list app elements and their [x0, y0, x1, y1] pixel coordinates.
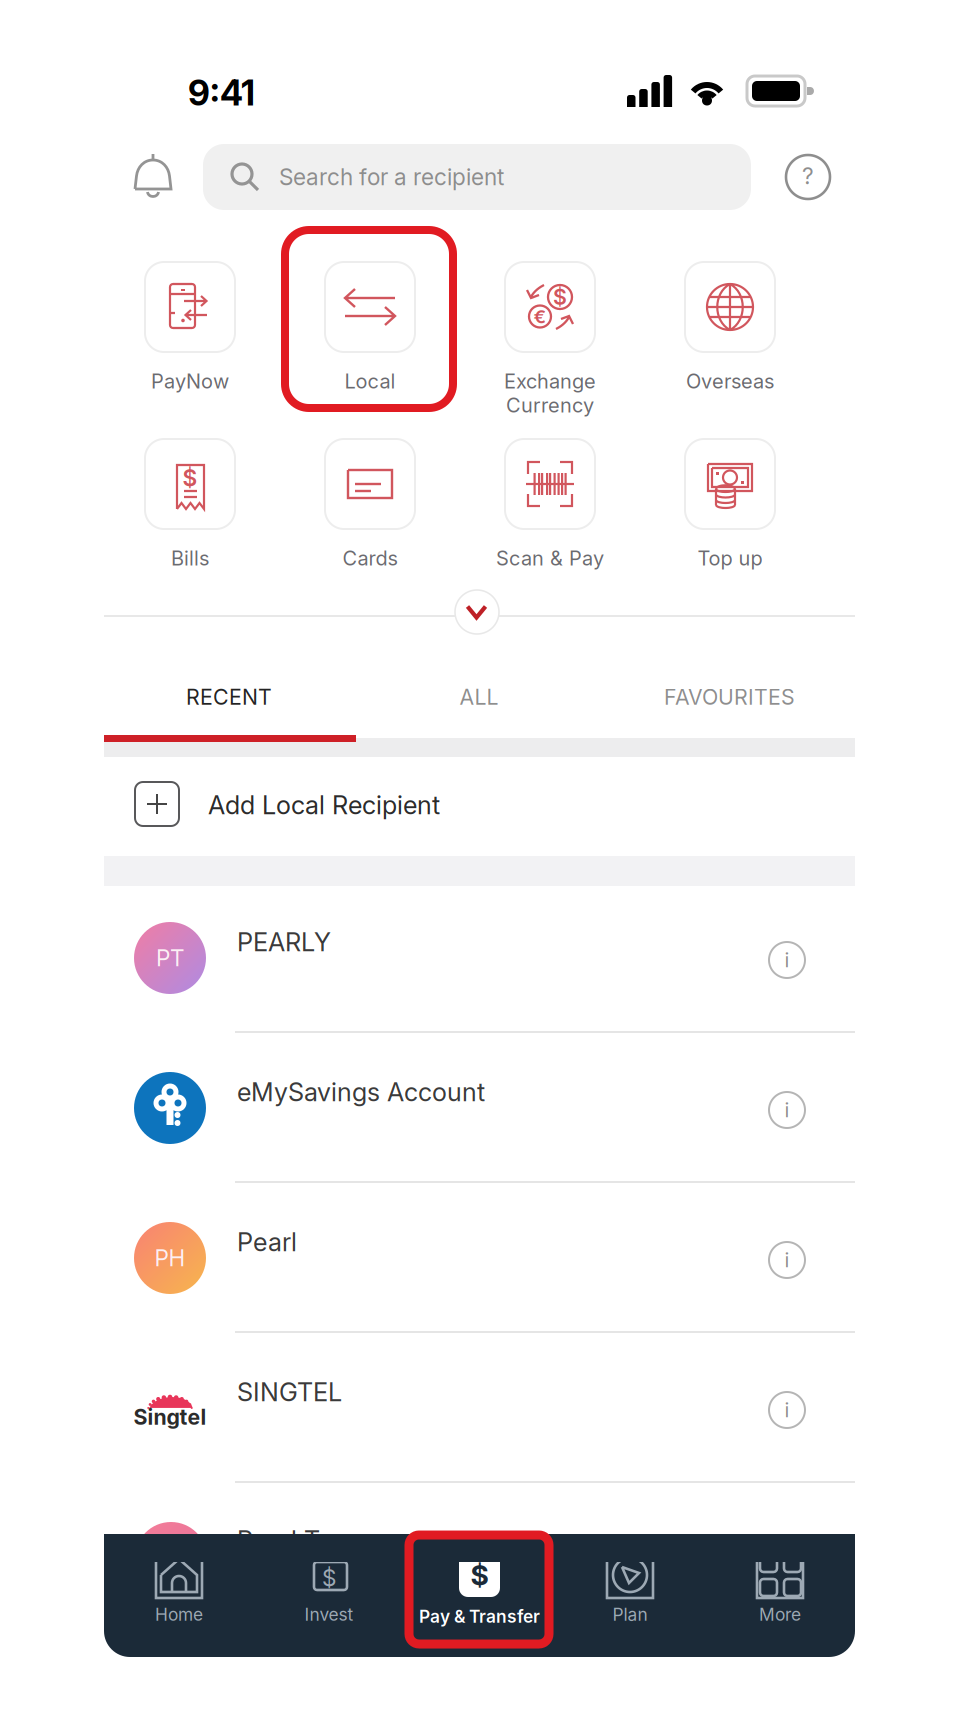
button[interactable]: eMySavings Account — [104, 1036, 855, 1186]
staticText: Pay & Transfer — [419, 1606, 540, 1627]
staticText: 9:41 — [188, 72, 255, 114]
staticText: Plan — [612, 1604, 647, 1625]
staticText: PayNow — [151, 369, 229, 393]
button[interactable]: Help — [777, 146, 839, 208]
button[interactable]: $ — [404, 1534, 555, 1657]
button[interactable]: Cards — [280, 439, 460, 599]
staticText: ? — [802, 162, 814, 190]
staticText: FAVOURITES — [664, 684, 795, 710]
button[interactable]: Singtel — [104, 1336, 855, 1486]
staticText: ALL — [459, 684, 498, 710]
staticText: i — [784, 1098, 789, 1122]
staticText: Top up — [697, 546, 762, 570]
button[interactable]: RECENT — [104, 662, 354, 732]
staticText: Pearl — [237, 1227, 297, 1257]
button[interactable]: Top up — [640, 439, 820, 599]
staticText: Currency — [506, 393, 594, 417]
button[interactable]: PT — [104, 886, 855, 1036]
button[interactable]: $ — [100, 439, 280, 599]
staticText: PEARLY — [237, 927, 331, 957]
button[interactable]: Info — [757, 1230, 817, 1290]
staticText: Invest — [304, 1604, 353, 1625]
button[interactable]: Scan & Pay — [460, 439, 640, 599]
button[interactable]: PayNow — [100, 262, 280, 422]
staticText: Add Local Recipient — [208, 790, 440, 820]
button[interactable]: Info — [757, 1080, 817, 1140]
button[interactable]: PH — [104, 1186, 855, 1336]
staticText: Overseas — [686, 369, 774, 393]
staticText — [777, 1564, 783, 1592]
button[interactable]: $ — [254, 1534, 404, 1657]
staticText: Singtel — [133, 1404, 206, 1430]
button[interactable]: Info — [757, 930, 817, 990]
staticText: PH — [154, 1244, 185, 1272]
button[interactable]: Overseas — [640, 262, 820, 422]
staticText: i — [784, 1398, 789, 1422]
staticText: SINGTEL — [237, 1377, 342, 1407]
button[interactable]: ALL — [354, 662, 604, 732]
button[interactable]: Expand — [455, 590, 499, 634]
button[interactable] — [705, 1534, 855, 1657]
button[interactable]: Local — [280, 262, 460, 422]
button[interactable]: Notifications — [118, 144, 188, 210]
button[interactable] — [555, 1534, 705, 1657]
staticText — [627, 1564, 633, 1592]
staticText: $ — [182, 464, 197, 492]
staticText: PT — [156, 944, 184, 972]
staticText: More — [759, 1604, 801, 1625]
button[interactable]: Info — [757, 1380, 817, 1440]
staticText: $ — [470, 1558, 488, 1592]
staticText: Search for a recipient — [279, 163, 504, 191]
staticText: Home — [155, 1604, 203, 1625]
staticText: Exchange — [504, 369, 596, 393]
staticText: eMySavings Account — [237, 1077, 485, 1107]
staticText: Local — [344, 369, 395, 393]
staticText: $ — [322, 1564, 336, 1592]
button[interactable]: Search for a recipient — [203, 144, 751, 210]
button[interactable]: FAVOURITES — [604, 662, 855, 732]
staticText: i — [784, 948, 789, 972]
staticText: i — [784, 1248, 789, 1272]
button[interactable]: Add Local Recipient — [104, 757, 855, 856]
staticText: Scan & Pay — [496, 546, 604, 570]
staticText — [176, 1564, 182, 1592]
staticText: Bills — [171, 546, 209, 570]
staticText: $ — [553, 284, 567, 310]
staticText: € — [533, 305, 546, 328]
staticText: Cards — [342, 546, 397, 570]
staticText: RECENT — [186, 684, 272, 710]
button[interactable]: $ — [460, 262, 640, 422]
button[interactable] — [104, 1534, 254, 1657]
staticText: Pearl T — [237, 1525, 320, 1555]
